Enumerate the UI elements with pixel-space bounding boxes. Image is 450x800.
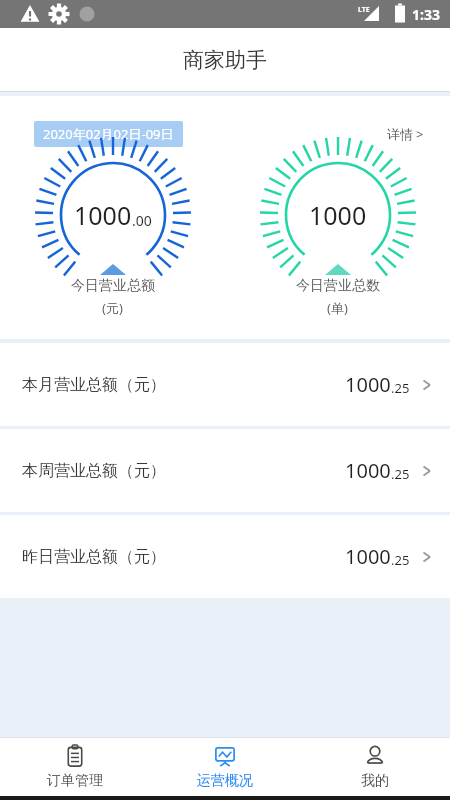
staticText: 订单管理 — [47, 772, 103, 790]
staticText: 今日营业总数 — [296, 277, 380, 295]
staticText: 本月营业总额（元） — [22, 375, 166, 395]
staticText: 昨日营业总额（元） — [22, 547, 166, 567]
button[interactable]: 2020年02月02日-09日 — [34, 121, 183, 147]
button[interactable]: 昨日营业总额（元） — [0, 515, 450, 598]
staticText: > — [416, 125, 424, 143]
staticText: (单) — [327, 299, 348, 317]
button[interactable]: 订单管理 — [0, 738, 150, 796]
staticText: 1000 — [345, 371, 391, 398]
button[interactable]: 运营概况 — [150, 738, 300, 796]
button[interactable]: 本月营业总额（元） — [0, 343, 450, 426]
staticText: 1:33 — [412, 5, 440, 24]
staticText: 1000 — [74, 198, 132, 232]
staticText: .25 — [391, 379, 410, 397]
staticText: 运营概况 — [197, 772, 253, 790]
staticText: 详情 — [387, 126, 413, 142]
staticText: (元) — [102, 299, 123, 317]
staticText: .25 — [391, 465, 410, 483]
staticText: .00 — [132, 211, 152, 230]
button[interactable]: 我的 — [300, 738, 450, 796]
staticText: LTE — [358, 5, 370, 15]
staticText: 1000 — [309, 198, 367, 232]
staticText: 2020年02月02日-09日 — [43, 125, 174, 143]
staticText: 我的 — [361, 772, 389, 790]
button[interactable]: 详情 — [383, 121, 428, 147]
staticText: 1000 — [345, 457, 391, 484]
staticText: 本周营业总额（元） — [22, 461, 166, 481]
staticText: 1000 — [345, 543, 391, 570]
staticText: 今日营业总额 — [71, 277, 155, 295]
staticText: 商家助手 — [183, 47, 267, 73]
button[interactable]: 本周营业总额（元） — [0, 429, 450, 512]
staticText: .25 — [391, 551, 410, 569]
